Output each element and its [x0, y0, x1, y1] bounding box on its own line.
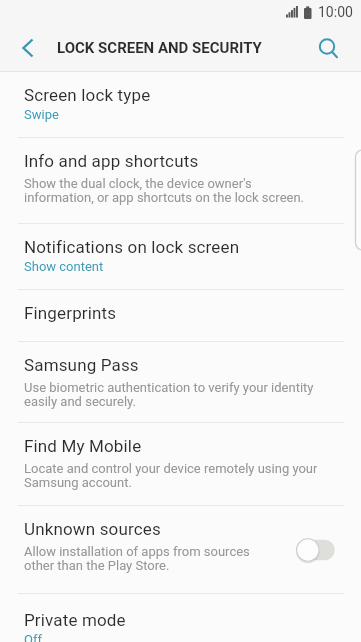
button[interactable]: Fingerprints [0, 290, 361, 342]
staticText: Screen lock type [24, 85, 151, 105]
button[interactable]: Private mode [0, 594, 361, 642]
staticText: Fingerprints [24, 303, 117, 323]
staticText: Use biometric authentication to verify y… [24, 380, 314, 410]
staticText: Off [24, 632, 42, 642]
staticText: Locate and control your device remotely … [24, 461, 317, 491]
staticText: LOCK SCREEN AND SECURITY [57, 39, 262, 57]
staticText: Show the dual clock, the device owner's … [24, 176, 305, 206]
button[interactable] [314, 32, 346, 64]
staticText: Private mode [24, 610, 126, 630]
button[interactable]: Info and app shortcuts [0, 138, 361, 224]
button[interactable]: Samsung Pass [0, 342, 361, 423]
button[interactable]: Notifications on lock screen [0, 224, 361, 290]
button[interactable]: Unknown sources [0, 506, 361, 594]
staticText: Show content [24, 259, 104, 274]
staticText: Find My Mobile [24, 436, 142, 456]
button[interactable]: Screen lock type [0, 72, 361, 138]
staticText: Swipe [24, 107, 59, 122]
staticText: Samsung Pass [24, 355, 139, 375]
staticText: Notifications on lock screen [24, 237, 240, 257]
staticText: 10:00 [318, 4, 353, 20]
button[interactable] [12, 32, 44, 64]
staticText: Info and app shortcuts [24, 151, 199, 171]
staticText: Unknown sources [24, 519, 161, 539]
button[interactable]: Find My Mobile [0, 423, 361, 506]
staticText: Allow installation of apps from sources … [24, 544, 250, 574]
